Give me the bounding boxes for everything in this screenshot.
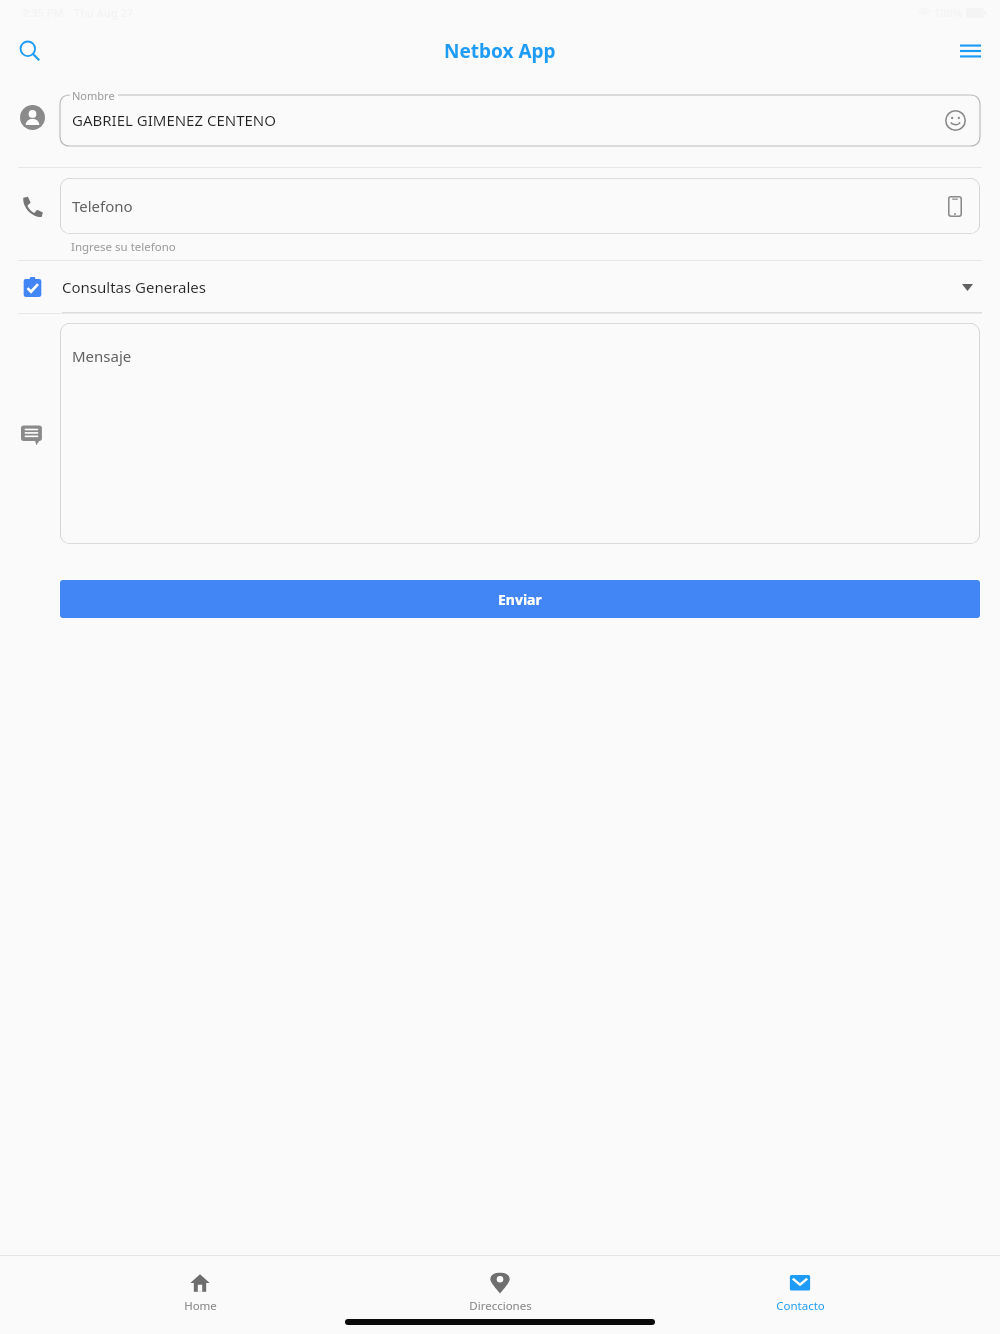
staticText: Ingrese su telefono xyxy=(71,239,176,255)
button[interactable]: Use phone number xyxy=(940,191,970,221)
staticText: Enviar xyxy=(498,590,542,609)
button[interactable]: Home xyxy=(100,1270,300,1316)
button[interactable]: Consultas Generales xyxy=(0,261,1000,313)
staticText: Home xyxy=(184,1298,217,1314)
button[interactable]: Enviar xyxy=(60,580,980,618)
button[interactable]: Direcciones xyxy=(400,1270,600,1316)
button[interactable]: Menu xyxy=(948,29,992,73)
staticText: Consultas Generales xyxy=(62,277,207,297)
staticText: Telefono xyxy=(72,196,133,216)
staticText: Mensaje xyxy=(72,346,132,366)
button[interactable]: Emoji xyxy=(940,105,970,135)
staticText: Contacto xyxy=(776,1298,825,1314)
button[interactable]: Nombre xyxy=(60,88,980,146)
staticText: Direcciones xyxy=(469,1298,532,1314)
staticText: Nombre xyxy=(72,88,115,103)
staticText: Netbox App xyxy=(444,38,556,64)
button[interactable]: Telefono xyxy=(60,178,980,234)
button[interactable]: Mensaje xyxy=(60,323,980,544)
staticText: GABRIEL GIMENEZ CENTENO xyxy=(72,110,276,130)
button[interactable]: Search xyxy=(8,29,52,73)
button[interactable]: Contacto xyxy=(700,1270,900,1316)
